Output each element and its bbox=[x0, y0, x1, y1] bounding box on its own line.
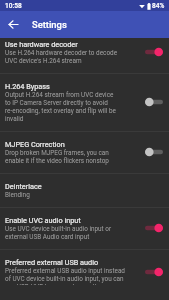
staticText: H.264 Bypass bbox=[5, 82, 50, 90]
button[interactable]: H.264 Bypass bbox=[0, 74, 169, 131]
staticText: 10:58 bbox=[5, 2, 22, 10]
staticText: Deinterlace bbox=[5, 182, 42, 190]
staticText: MJPEG Correction bbox=[5, 140, 65, 148]
staticText: 84% bbox=[152, 2, 165, 10]
staticText: Drop broken MJPEG frames, you can enable… bbox=[5, 148, 109, 164]
button[interactable]: Enabled bbox=[144, 221, 164, 235]
staticText: Output H.264 stream from UVC device to I… bbox=[5, 90, 116, 122]
button[interactable]: Disabled bbox=[144, 95, 164, 109]
button[interactable]: Deinterlace bbox=[0, 174, 169, 207]
staticText: Use UVC device built-in audio input or e… bbox=[5, 224, 112, 240]
button[interactable]: Disabled bbox=[144, 145, 164, 159]
staticText: Use H.264 hardware decoder to decode UVC… bbox=[5, 48, 118, 64]
button[interactable]: Enable UVC audio input bbox=[0, 208, 169, 249]
button[interactable]: Enabled bbox=[144, 265, 164, 279]
staticText: Preferred external USB audio bbox=[5, 258, 99, 266]
button[interactable]: MJPEG Correction bbox=[0, 132, 169, 173]
staticText: Use hardware decoder bbox=[5, 40, 78, 48]
button[interactable]: Use hardware decoder bbox=[0, 38, 169, 73]
staticText: Settings bbox=[32, 19, 67, 30]
staticText: Blending bbox=[5, 190, 30, 198]
staticText: Enable UVC audio input bbox=[5, 216, 81, 224]
button[interactable]: Preferred external USB audio bbox=[0, 250, 169, 294]
staticText: Preferred external USB audio input inste… bbox=[5, 266, 125, 285]
button[interactable]: Back bbox=[0, 11, 27, 38]
button[interactable]: Enabled bbox=[144, 45, 164, 59]
